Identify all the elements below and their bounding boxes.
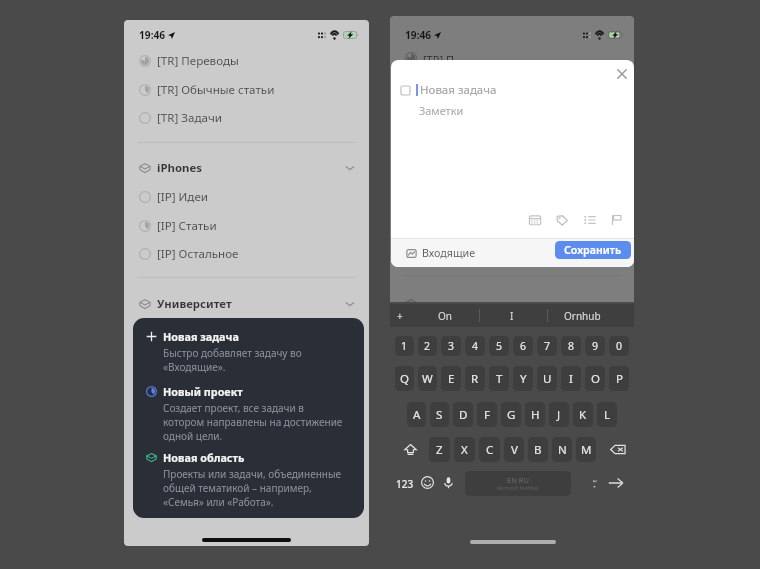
button[interactable]: Z [429,437,450,462]
staticText: Н [423,298,432,310]
staticText: R [471,371,479,387]
button[interactable]: P [609,366,629,391]
button[interactable]: Date [528,213,542,227]
button[interactable]: E [441,366,461,391]
button[interactable]: 7 [537,336,557,356]
button[interactable]: G [501,402,521,427]
staticText: C [486,442,494,458]
staticText: D [459,407,468,423]
staticText: 4 [472,339,479,353]
button[interactable]: M [576,437,596,462]
staticText: Новая задача [163,329,239,344]
button[interactable]: [TR] Обычные статьи [124,77,369,103]
button[interactable]: F [477,402,497,427]
button[interactable]: Tag [555,213,569,227]
staticText: G [507,407,516,423]
button[interactable]: Emoji [421,476,434,489]
staticText: N [558,442,567,458]
button[interactable]: 0 [609,336,629,356]
staticText: 0 [616,339,623,353]
staticText: W [422,371,433,387]
staticText: 5 [496,339,503,353]
button[interactable]: 3 [441,336,461,356]
button[interactable]: T [489,366,509,391]
button[interactable]: S [430,402,449,427]
button[interactable]: On [414,304,475,327]
staticText: Входящие [422,246,476,261]
button[interactable]: Ornhub [550,304,614,327]
button[interactable]: Enter [608,475,624,491]
button[interactable]: Voice input [442,476,455,489]
staticText: U [543,371,552,387]
button[interactable]: K [573,402,593,427]
button[interactable]: [IP] Остальное [124,241,369,267]
staticText: 2 [424,339,431,353]
staticText: H [531,407,540,423]
button[interactable]: V [504,437,524,462]
button[interactable]: Новый проект [133,384,364,443]
staticText: Новая область [163,450,245,465]
staticText: L [604,407,611,423]
button[interactable]: Backspace [605,437,631,462]
staticText: 1 [401,339,408,353]
staticText: Новая задача [420,82,497,98]
button[interactable]: Shift [397,437,423,462]
button[interactable]: C [479,437,500,462]
button[interactable]: Close [615,67,629,81]
button[interactable]: U [537,366,557,391]
button[interactable]: Checklist [583,213,597,227]
button[interactable]: [TR] Переводы [124,48,369,74]
staticText: O [591,371,600,387]
staticText: 3 [448,339,455,353]
staticText: X [461,442,468,458]
button[interactable]: A [407,402,426,427]
staticText: [TR] Переводы [157,53,239,69]
staticText: F [484,407,490,423]
button[interactable]: N [552,437,572,462]
button[interactable]: X [454,437,475,462]
button[interactable]: Новая задача [133,329,364,374]
button[interactable]: B [528,437,548,462]
button[interactable]: iPhones [124,155,369,181]
button[interactable]: Y [513,366,533,391]
button[interactable]: J [549,402,569,427]
staticText: Q [400,371,409,387]
staticText: 19:46 [139,28,166,42]
button[interactable]: W [418,366,437,391]
button[interactable]: I [482,304,542,327]
button[interactable]: Входящие [406,244,476,262]
button[interactable]: Новая область [133,450,364,509]
staticText: A [413,407,421,423]
button[interactable]: H [525,402,545,427]
button[interactable]: 123 [395,471,414,496]
button[interactable]: 1 [395,336,414,356]
button[interactable]: 6 [513,336,533,356]
staticText: B [534,442,542,458]
button[interactable]: 2 [418,336,437,356]
button[interactable]: [IP] Идеи [124,184,369,210]
button[interactable]: R [465,366,485,391]
button[interactable]: 4 [465,336,485,356]
button[interactable]: [IP] Статьи [124,213,369,239]
staticText: 8 [568,339,575,353]
staticText: Заметки [419,103,464,118]
staticText: P [616,371,623,387]
button[interactable]: Сохранить [555,241,631,259]
button[interactable]: I [561,366,581,391]
button[interactable]: 5 [489,336,509,356]
button[interactable]: EN RU [465,471,571,496]
button[interactable]: L [597,402,617,427]
button[interactable]: Punctuation [586,471,604,496]
staticText: T [496,371,503,387]
button[interactable]: Университет [124,291,369,317]
button[interactable]: + [392,304,408,327]
button[interactable]: [TR] Задачи [124,105,369,131]
button[interactable]: D [453,402,473,427]
button[interactable]: 9 [585,336,605,356]
button[interactable]: 8 [561,336,581,356]
staticText: Сохранить [564,243,622,258]
button[interactable]: O [585,366,605,391]
button[interactable]: Flag [610,213,624,227]
button[interactable]: Q [395,366,414,391]
staticText: 6 [520,339,527,353]
